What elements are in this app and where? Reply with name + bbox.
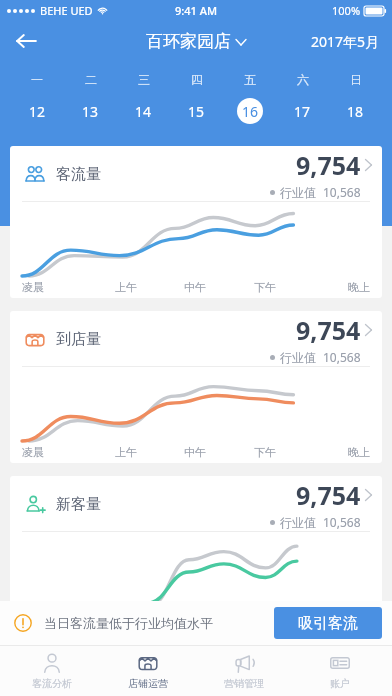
staticText: 晚上 (348, 445, 370, 459)
button[interactable]: 14 (117, 94, 170, 128)
staticText: 100% (332, 3, 361, 18)
staticText: 下午 (254, 445, 276, 459)
staticText: 10,568 (323, 349, 361, 365)
staticText: 9,754 (296, 478, 361, 512)
staticText: 18 (347, 102, 364, 121)
staticText: 四 (191, 72, 203, 87)
staticText: 上午 (115, 280, 137, 294)
staticText: 13 (82, 102, 99, 121)
button[interactable]: 账户 (296, 645, 384, 696)
staticText: 账户 (330, 677, 350, 690)
staticText: 到店量 (56, 330, 101, 349)
button[interactable]: 13 (64, 94, 117, 128)
staticText: 吸引客流 (298, 614, 358, 633)
staticText: 16 (242, 102, 259, 121)
staticText: 晚上 (348, 280, 370, 294)
button[interactable]: 客流分析 (8, 645, 96, 696)
staticText: 2017年5月 (311, 32, 380, 51)
staticText: 9,754 (296, 313, 361, 347)
staticText: 上午 (115, 445, 137, 459)
staticText: BEHE UED (40, 3, 93, 18)
button[interactable]: 到店量 (10, 311, 382, 463)
staticText: 14 (135, 102, 152, 121)
staticText: 9:41 AM (175, 3, 218, 18)
staticText: 12 (29, 102, 46, 121)
staticText: 客流量 (56, 165, 101, 184)
staticText: 中午 (184, 280, 206, 294)
staticText: 中午 (184, 445, 206, 459)
staticText: 行业值 (280, 185, 316, 200)
staticText: 下午 (254, 280, 276, 294)
staticText: 新客量 (56, 495, 101, 514)
staticText: 凌晨 (22, 445, 44, 459)
staticText: 五 (244, 72, 256, 87)
staticText: 一 (31, 72, 43, 87)
staticText: 营销管理 (224, 677, 264, 690)
staticText: 10,568 (323, 514, 361, 530)
button[interactable]: 百环家园店 (146, 31, 246, 52)
staticText: 二 (85, 72, 97, 87)
button[interactable]: 2017年5月 (311, 32, 380, 51)
button[interactable]: 16 (223, 94, 276, 128)
staticText: 日 (350, 72, 362, 87)
button[interactable]: 18 (329, 94, 382, 128)
staticText: 行业值 (280, 515, 316, 530)
staticText: 三 (138, 72, 150, 87)
button[interactable]: 17 (276, 94, 329, 128)
staticText: 9,754 (296, 148, 361, 182)
button[interactable]: 客流量 (10, 146, 382, 298)
button[interactable]: 15 (170, 94, 223, 128)
button[interactable]: 新客量 (10, 476, 382, 606)
staticText: 店铺运营 (128, 677, 168, 690)
button[interactable]: 店铺运营 (104, 645, 192, 696)
staticText: 17 (294, 102, 311, 121)
button[interactable]: 吸引客流 (274, 607, 382, 639)
button[interactable]: Back (4, 20, 48, 62)
staticText: 行业值 (280, 350, 316, 365)
staticText: 六 (297, 72, 309, 87)
staticText: 凌晨 (22, 280, 44, 294)
button[interactable]: 营销管理 (200, 645, 288, 696)
button[interactable]: 12 (10, 94, 64, 128)
staticText: 百环家园店 (146, 31, 231, 52)
staticText: 10,568 (323, 184, 361, 200)
staticText: 客流分析 (32, 677, 72, 690)
staticText: 15 (188, 102, 205, 121)
staticText: 当日客流量低于行业均值水平 (44, 615, 213, 631)
